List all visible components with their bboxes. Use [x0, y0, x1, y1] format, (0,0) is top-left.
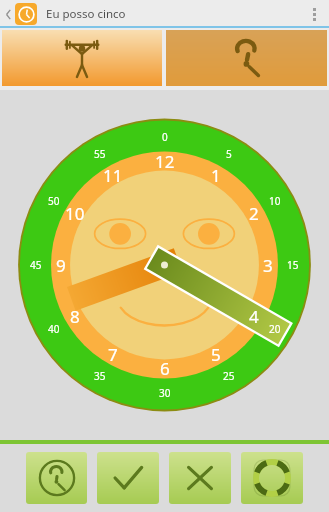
staticText: 15 [287, 258, 299, 272]
staticText: 1 [211, 164, 221, 187]
button[interactable]: Hint [26, 452, 87, 504]
staticText: 11 [103, 164, 123, 187]
staticText: 20 [269, 322, 281, 336]
staticText: 0 [162, 130, 168, 144]
staticText: 30 [159, 386, 171, 400]
button[interactable]: Cancel [169, 452, 231, 504]
staticText: 5 [226, 147, 232, 161]
staticText: 7 [108, 343, 118, 366]
staticText: 50 [48, 194, 60, 208]
staticText: 25 [223, 369, 235, 383]
staticText: 8 [70, 305, 80, 328]
button[interactable]: Confirm [97, 452, 159, 504]
button[interactable]: Interactive clock face [0, 90, 329, 440]
staticText: 3 [263, 254, 273, 277]
staticText: 4 [249, 305, 259, 328]
staticText: 55 [94, 147, 106, 161]
staticText: 5 [211, 343, 221, 366]
staticText: 40 [48, 322, 60, 336]
button[interactable]: More options [303, 0, 325, 28]
staticText: 2 [249, 202, 259, 225]
staticText: 6 [160, 357, 170, 380]
staticText: 9 [56, 254, 66, 277]
staticText: 10 [65, 202, 85, 225]
staticText: 10 [269, 194, 281, 208]
button[interactable]: Practice mode [2, 30, 162, 86]
staticText: 35 [94, 369, 106, 383]
staticText: 45 [30, 258, 42, 272]
staticText: 12 [155, 150, 175, 173]
staticText: Eu posso cinco [46, 6, 126, 22]
button[interactable]: Quiz mode [166, 30, 327, 86]
button[interactable]: Help [241, 452, 303, 504]
button[interactable]: Navigate up [2, 0, 15, 28]
button[interactable]: App icon [15, 3, 37, 25]
